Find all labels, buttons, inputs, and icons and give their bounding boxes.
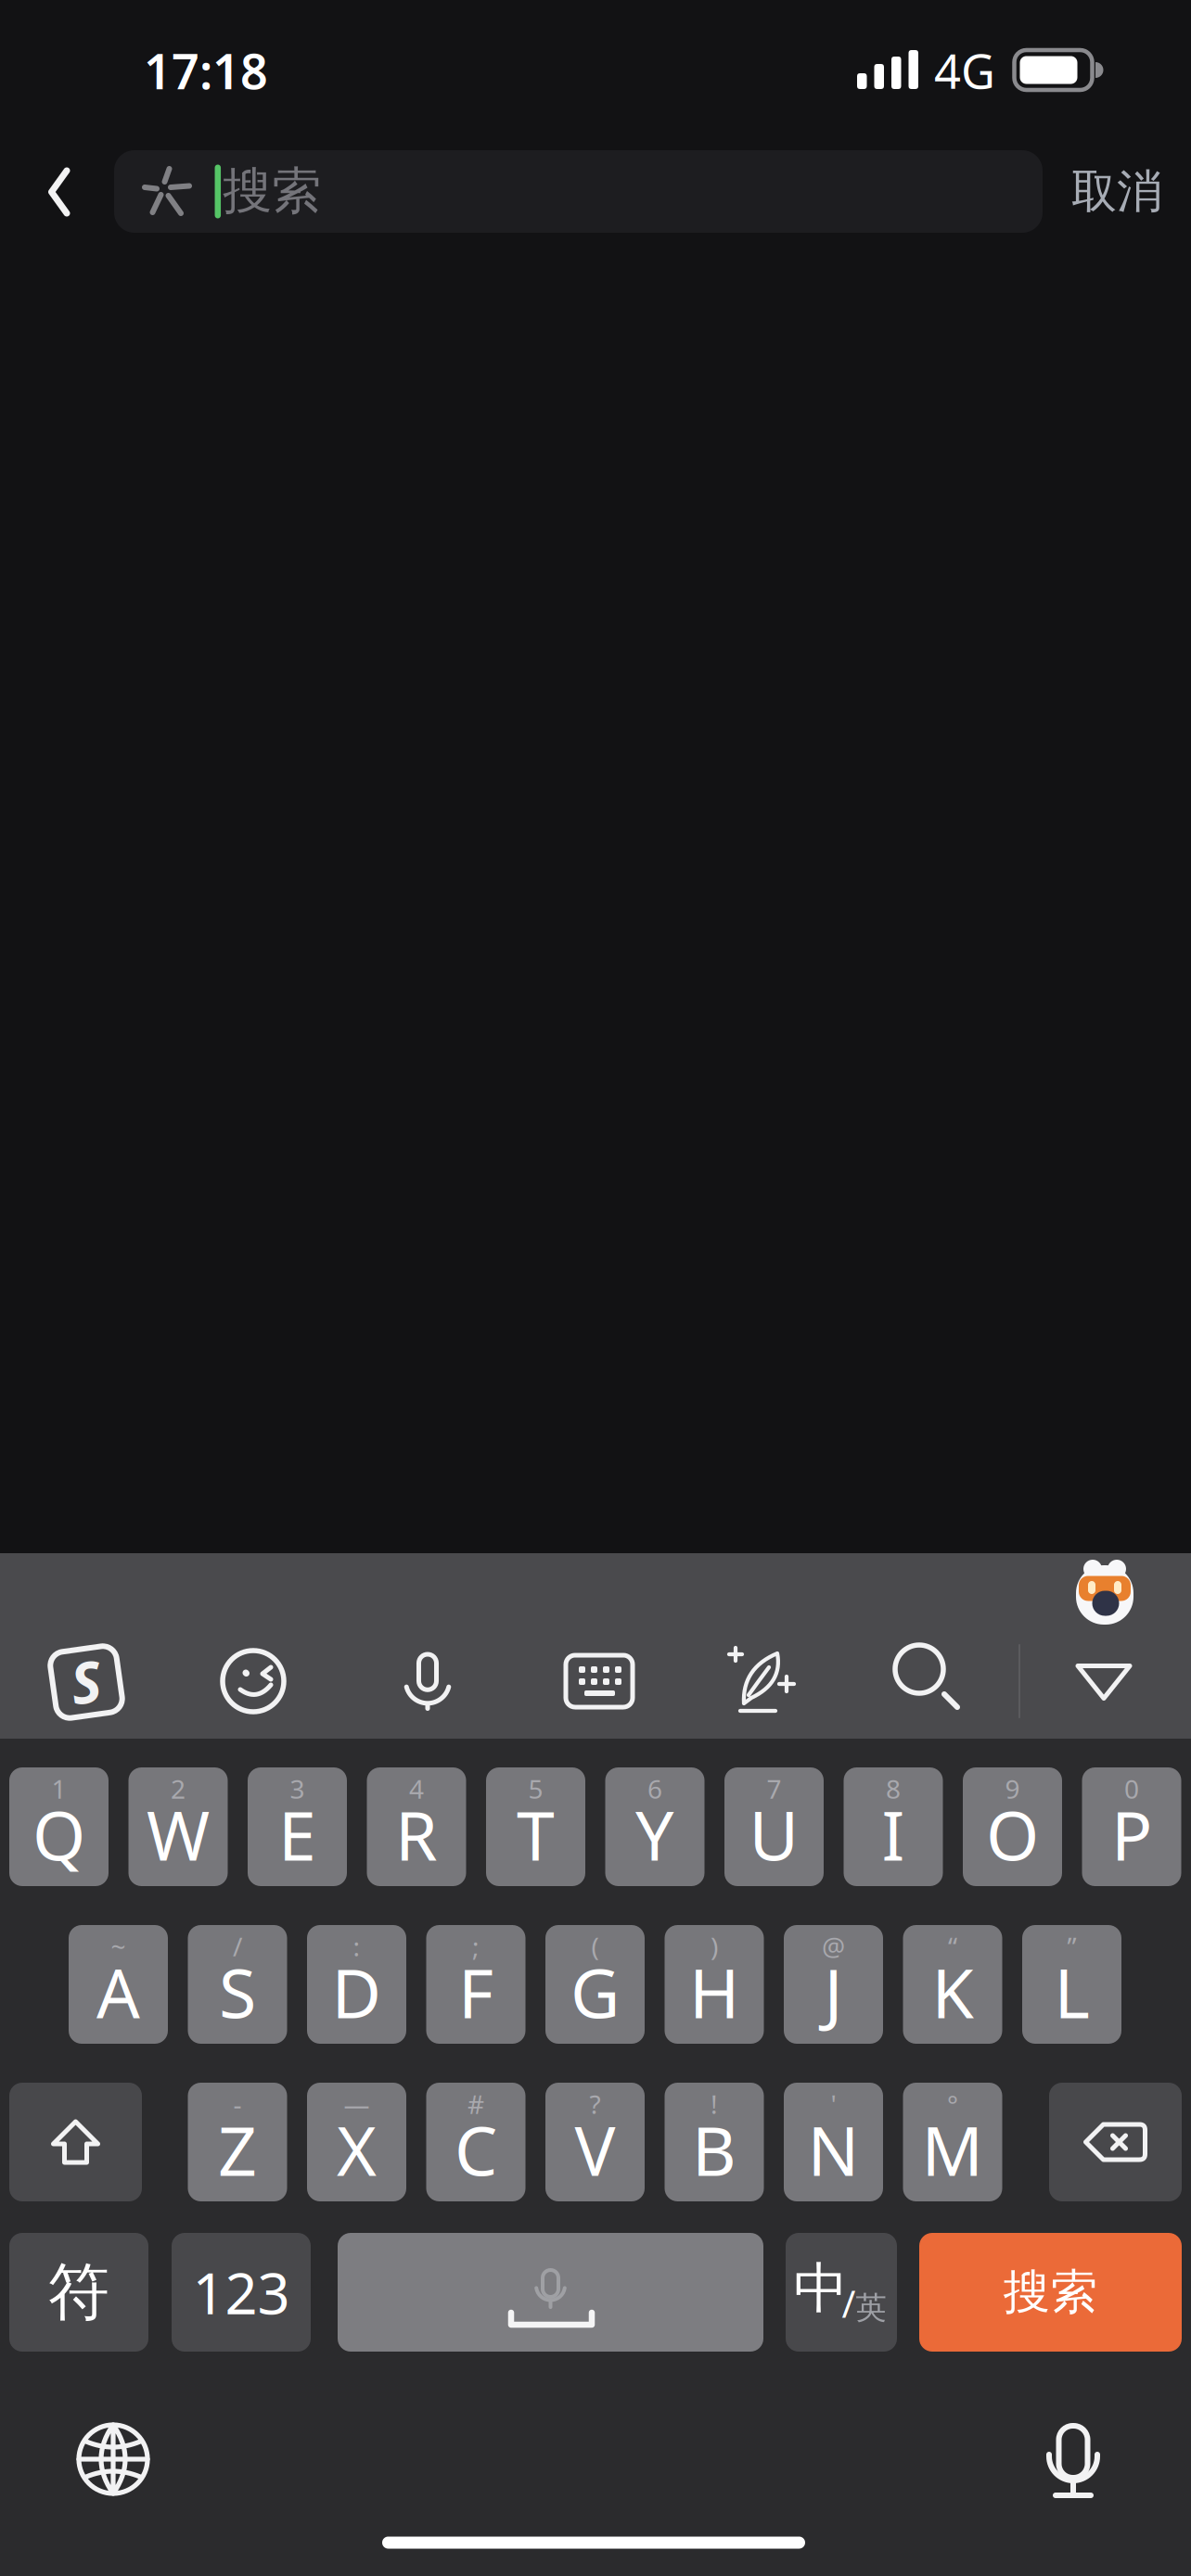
button[interactable]: ' <box>784 2083 883 2201</box>
staticText: 3 <box>290 1771 305 1806</box>
staticText: 搜索 <box>223 161 321 221</box>
button[interactable]: 7 <box>724 1767 824 1886</box>
staticText: 0 <box>1124 1771 1139 1806</box>
staticText: P <box>1111 1789 1152 1879</box>
button[interactable]: “ <box>903 1925 1002 2044</box>
staticText: 搜索 <box>1003 2263 1098 2321</box>
staticText: ~ <box>111 1929 126 1964</box>
staticText: O <box>986 1789 1039 1879</box>
staticText: L <box>1054 1947 1089 2037</box>
staticText: C <box>455 2104 497 2195</box>
staticText: — <box>344 2087 370 2121</box>
staticText: ) <box>711 1929 718 1964</box>
button[interactable]: 123 <box>172 2233 311 2352</box>
staticText: 1 <box>51 1771 66 1806</box>
button[interactable]: 9 <box>963 1767 1062 1886</box>
button[interactable]: 符 <box>9 2233 148 2352</box>
button[interactable]: Delete <box>1049 2083 1182 2201</box>
staticText: : <box>353 1929 360 1964</box>
staticText: R <box>395 1789 438 1879</box>
staticText: B <box>692 2104 736 2195</box>
button[interactable]: Handwriting <box>724 1641 801 1719</box>
staticText: 5 <box>528 1771 543 1806</box>
staticText: ” <box>1067 1929 1076 1964</box>
staticText: A <box>96 1947 140 2037</box>
button[interactable]: 取消 <box>1071 163 1162 220</box>
staticText: V <box>575 2104 615 2195</box>
button[interactable]: Back <box>48 168 70 216</box>
staticText: J <box>824 1947 843 2037</box>
staticText: 4G <box>934 39 995 102</box>
staticText: S <box>219 1947 256 2037</box>
staticText: I <box>882 1789 905 1879</box>
button[interactable]: ! <box>665 2083 764 2201</box>
staticText: 7 <box>767 1771 781 1806</box>
button[interactable]: - <box>188 2083 287 2201</box>
staticText: ? <box>589 2087 601 2121</box>
button[interactable]: Shift <box>9 2083 142 2201</box>
staticText: # <box>467 2087 484 2121</box>
staticText: T <box>517 1789 555 1879</box>
button[interactable]: 0 <box>1082 1767 1181 1886</box>
button[interactable]: ? <box>545 2083 645 2201</box>
button[interactable]: Next keyboard <box>77 2423 149 2495</box>
staticText: ' <box>831 2087 836 2121</box>
staticText: “ <box>948 1929 957 1964</box>
button[interactable]: 2 <box>128 1767 228 1886</box>
staticText: 中 <box>794 2255 848 2322</box>
staticText: 英 <box>856 2289 886 2327</box>
staticText: U <box>749 1789 799 1879</box>
button[interactable]: ) <box>665 1925 764 2044</box>
staticText: Y <box>635 1789 674 1879</box>
staticText: ! <box>711 2087 718 2121</box>
staticText: / <box>233 1929 242 1964</box>
button[interactable]: ° <box>903 2083 1002 2201</box>
button[interactable]: 8 <box>844 1767 943 1886</box>
staticText: / <box>842 2279 856 2328</box>
button[interactable]: 搜索 <box>919 2233 1182 2352</box>
button[interactable]: Chinese / English <box>786 2233 897 2352</box>
button[interactable]: ~ <box>69 1925 168 2044</box>
button[interactable]: 4 <box>367 1767 466 1886</box>
button[interactable]: 6 <box>605 1767 704 1886</box>
button[interactable]: Voice input <box>402 1650 454 1711</box>
button[interactable]: Sogou <box>47 1643 125 1721</box>
button[interactable]: 1 <box>9 1767 109 1886</box>
button[interactable]: Dictation <box>1047 2423 1099 2499</box>
button[interactable]: — <box>307 2083 406 2201</box>
staticText: E <box>278 1789 316 1879</box>
staticText: X <box>337 2104 377 2195</box>
button[interactable]: ( <box>545 1925 645 2044</box>
staticText: N <box>807 2104 859 2195</box>
staticText: S <box>71 1643 102 1719</box>
staticText: 6 <box>647 1771 662 1806</box>
staticText: Q <box>32 1789 85 1879</box>
button[interactable]: Emoji <box>214 1642 292 1720</box>
button[interactable]: Sogou assistant <box>1074 1559 1135 1626</box>
staticText: ( <box>591 1929 599 1964</box>
button[interactable]: Space <box>338 2233 763 2352</box>
button[interactable]: Search <box>114 150 1043 233</box>
staticText: @ <box>822 1929 845 1964</box>
button[interactable]: ” <box>1022 1925 1121 2044</box>
button[interactable]: ; <box>426 1925 525 2044</box>
button[interactable]: # <box>426 2083 525 2201</box>
button[interactable]: Search tools <box>891 1641 969 1719</box>
button[interactable]: : <box>307 1925 406 2044</box>
button[interactable]: @ <box>784 1925 883 2044</box>
staticText: 2 <box>171 1771 186 1806</box>
staticText: K <box>932 1947 973 2037</box>
staticText: ° <box>947 2087 958 2121</box>
staticText: 8 <box>886 1771 901 1806</box>
button[interactable]: Keyboard layout <box>560 1642 638 1720</box>
button[interactable]: 3 <box>248 1767 347 1886</box>
staticText: 123 <box>192 2255 290 2330</box>
staticText: G <box>570 1947 620 2037</box>
staticText: W <box>147 1789 210 1879</box>
staticText: M <box>922 2104 984 2195</box>
button[interactable]: Hide keyboard <box>1078 1666 1130 1698</box>
button[interactable]: / <box>188 1925 287 2044</box>
staticText: D <box>332 1947 382 2037</box>
staticText: 17:18 <box>144 38 268 103</box>
button[interactable]: 5 <box>486 1767 585 1886</box>
